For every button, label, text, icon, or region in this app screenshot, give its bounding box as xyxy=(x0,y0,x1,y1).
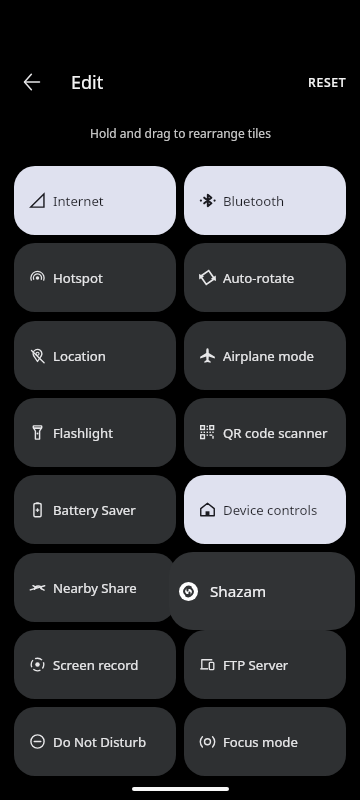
button[interactable]: Location xyxy=(14,321,176,390)
button[interactable]: Hotspot xyxy=(14,243,176,312)
staticText: QR code scanner xyxy=(223,424,328,442)
button[interactable]: Focus mode xyxy=(184,707,346,776)
button[interactable]: Battery Saver xyxy=(14,475,176,544)
button[interactable]: Screen record xyxy=(14,630,176,699)
staticText: Shazam xyxy=(210,581,267,602)
staticText: Hotspot xyxy=(53,269,103,287)
staticText: Device controls xyxy=(223,501,318,519)
staticText: Hold and drag to rearrange tiles xyxy=(90,125,271,141)
button[interactable]: FTP Server xyxy=(184,630,346,699)
button[interactable]: Do Not Disturb xyxy=(14,707,176,776)
staticText: Internet xyxy=(53,192,104,210)
button[interactable]: QR code scanner xyxy=(184,398,346,467)
staticText: Screen record xyxy=(53,656,139,674)
staticText: Flashlight xyxy=(53,424,113,442)
button[interactable]: Internet xyxy=(14,166,176,235)
button[interactable]: Airplane mode xyxy=(184,321,346,390)
staticText: Edit xyxy=(71,70,104,95)
staticText: FTP Server xyxy=(223,656,289,674)
button[interactable]: Auto-rotate xyxy=(184,243,346,312)
button[interactable]: Bluetooth xyxy=(184,166,346,235)
button[interactable]: Nearby Share xyxy=(14,553,176,622)
button[interactable]: Flashlight xyxy=(14,398,176,467)
staticText: Auto-rotate xyxy=(223,269,295,287)
staticText: RESET xyxy=(308,74,347,91)
staticText: Do Not Disturb xyxy=(53,733,147,751)
button[interactable]: Device controls xyxy=(184,475,346,544)
button[interactable]: Shazam xyxy=(169,552,355,630)
staticText: Airplane mode xyxy=(223,347,315,365)
staticText: Nearby Share xyxy=(53,579,137,597)
staticText: Location xyxy=(53,347,106,365)
button[interactable]: Back xyxy=(16,66,48,98)
staticText: Battery Saver xyxy=(53,501,136,519)
staticText: Bluetooth xyxy=(223,192,285,210)
button[interactable]: RESET xyxy=(308,74,347,91)
staticText: Focus mode xyxy=(223,733,298,751)
